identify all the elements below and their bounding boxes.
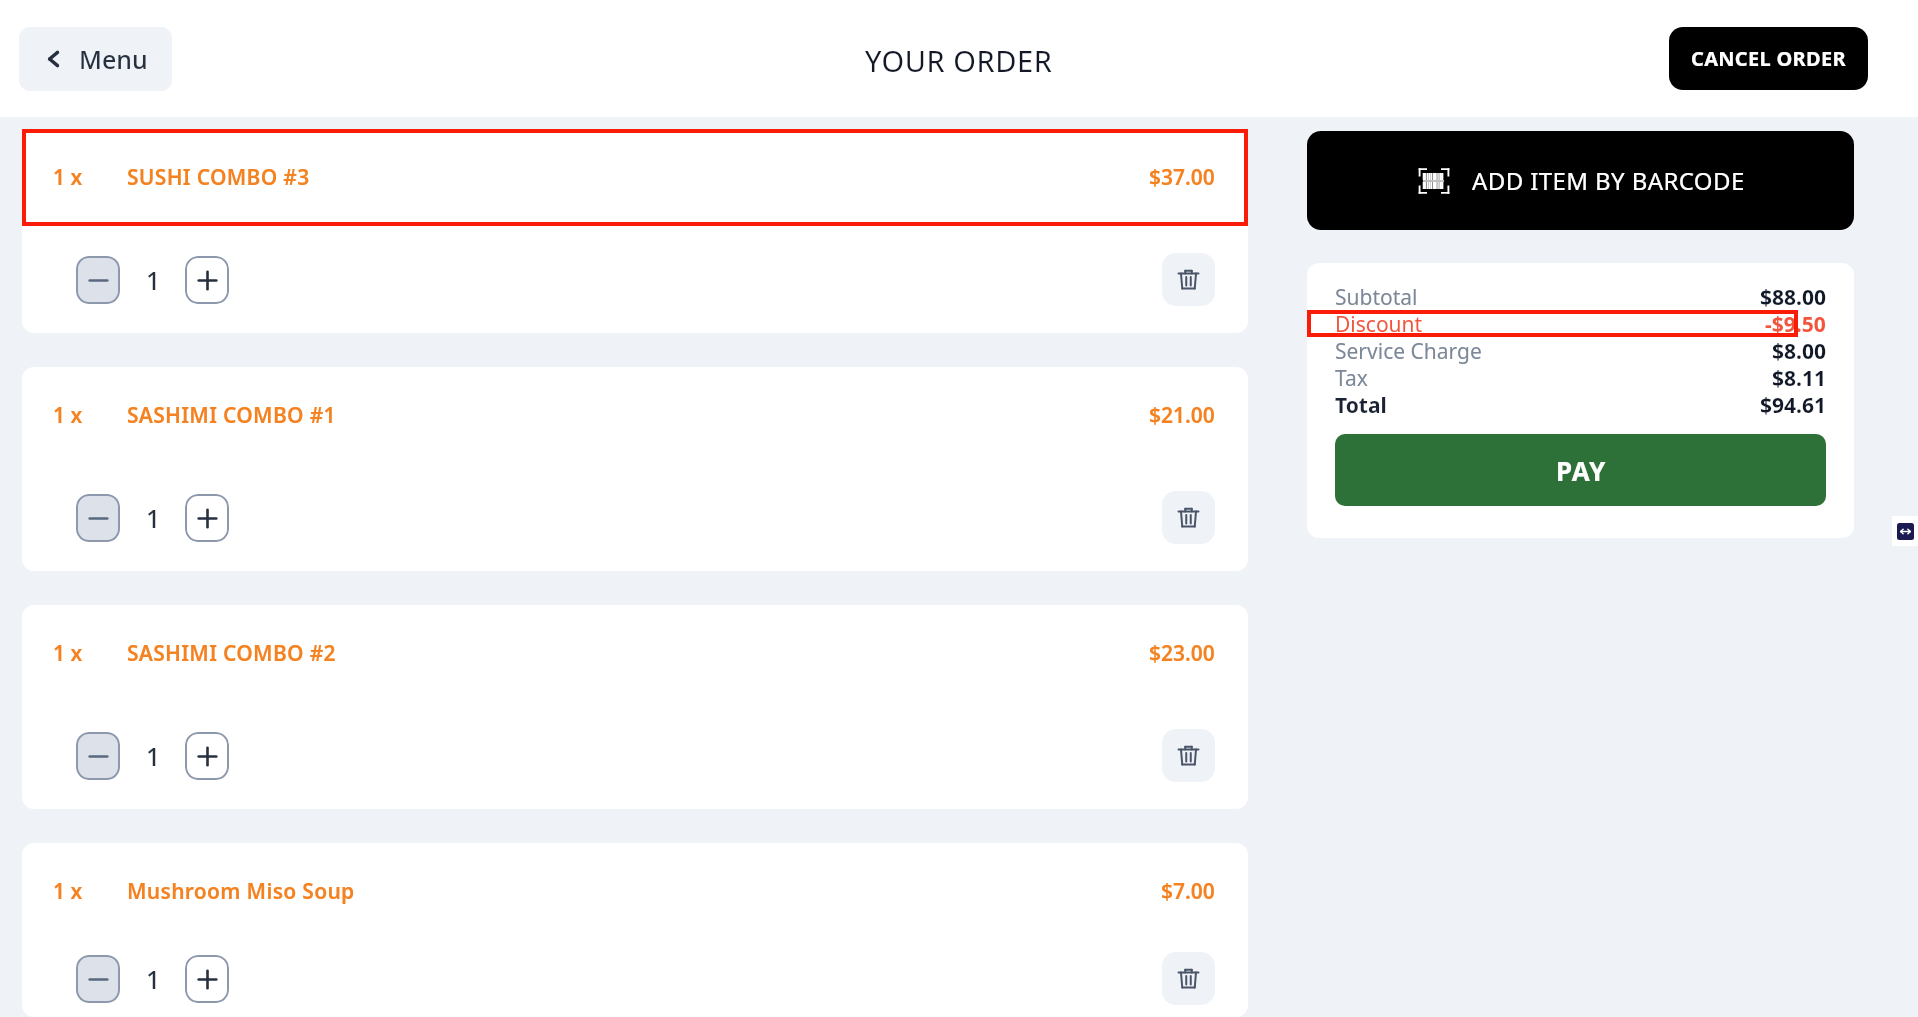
button[interactable]: Remove item — [1162, 952, 1215, 1005]
staticText: 1 x — [53, 163, 83, 192]
staticText: Service Charge — [1335, 337, 1482, 364]
button[interactable]: Remove item — [1162, 729, 1215, 782]
button[interactable]: Remove item — [1162, 491, 1215, 544]
staticText: $21.00 — [1149, 401, 1215, 430]
button[interactable]: Increase quantity — [185, 494, 229, 542]
staticText: $94.61 — [1760, 391, 1826, 418]
staticText: Tax — [1335, 364, 1368, 391]
staticText: 1 x — [53, 401, 83, 430]
staticText: $7.00 — [1161, 877, 1215, 906]
staticText: 1 x — [53, 639, 83, 668]
button[interactable]: Resize panel — [1892, 516, 1918, 546]
staticText: $23.00 — [1149, 639, 1215, 668]
staticText: PAY — [1556, 453, 1606, 488]
button[interactable]: CANCEL ORDER — [1669, 27, 1868, 90]
button[interactable]: Menu — [19, 27, 172, 91]
button[interactable]: Decrease quantity — [76, 256, 120, 304]
staticText: YOUR ORDER — [865, 41, 1053, 80]
staticText: CANCEL ORDER — [1691, 45, 1846, 72]
button[interactable]: Decrease quantity — [76, 955, 120, 1003]
staticText: $8.00 — [1772, 337, 1826, 364]
staticText: $88.00 — [1760, 283, 1826, 310]
button[interactable]: Decrease quantity — [76, 494, 120, 542]
staticText: Menu — [79, 42, 148, 76]
button[interactable]: 1 x — [22, 605, 1248, 809]
staticText: 1 — [146, 501, 161, 535]
staticText: -$9.50 — [1765, 310, 1826, 337]
button[interactable]: Remove item — [1162, 253, 1215, 306]
staticText: ADD ITEM BY BARCODE — [1472, 164, 1745, 197]
staticText: 1 — [146, 263, 161, 297]
staticText: SUSHI COMBO #3 — [127, 163, 310, 192]
button[interactable]: 1 x — [22, 129, 1248, 333]
staticText: SASHIMI COMBO #2 — [127, 639, 336, 668]
button[interactable]: 1 x — [22, 843, 1248, 1017]
button[interactable]: PAY — [1335, 434, 1826, 506]
button[interactable]: Increase quantity — [185, 256, 229, 304]
staticText: $37.00 — [1149, 163, 1215, 192]
staticText: 1 — [146, 739, 161, 773]
staticText: 1 x — [53, 877, 83, 906]
staticText: $8.11 — [1772, 364, 1826, 391]
button[interactable]: 1 x — [22, 367, 1248, 571]
button[interactable]: Decrease quantity — [76, 732, 120, 780]
staticText: Subtotal — [1335, 283, 1418, 310]
button[interactable]: Increase quantity — [185, 732, 229, 780]
staticText: 1 — [146, 962, 161, 996]
button[interactable]: Increase quantity — [185, 955, 229, 1003]
staticText: SASHIMI COMBO #1 — [127, 401, 336, 430]
staticText: Mushroom Miso Soup — [127, 877, 355, 906]
staticText: Total — [1335, 391, 1387, 418]
button[interactable]: ADD ITEM BY BARCODE — [1307, 131, 1854, 230]
staticText: Discount — [1335, 310, 1423, 337]
